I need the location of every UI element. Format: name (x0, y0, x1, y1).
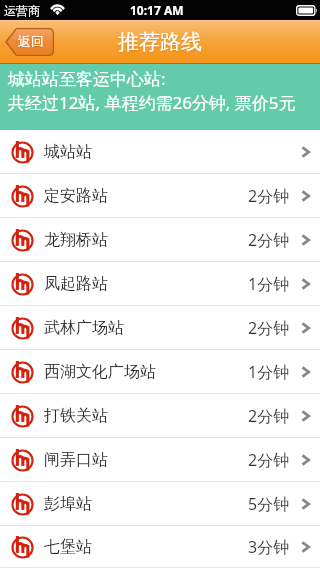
staticText: 2分钟 (248, 317, 290, 339)
staticText: 打铁关站 (44, 406, 108, 426)
staticText: 5分钟 (248, 493, 290, 515)
staticText: 推荐路线 (118, 29, 202, 55)
button[interactable]: 七堡站 (0, 526, 320, 568)
staticText: 3分钟 (248, 536, 290, 558)
staticText: 2分钟 (248, 185, 290, 207)
staticText: 1分钟 (248, 361, 290, 383)
button[interactable]: 凤起路站 (0, 262, 320, 306)
staticText: 定安路站 (44, 186, 108, 206)
staticText: 2分钟 (248, 405, 290, 427)
staticText: 城站站至客运中心站: (8, 67, 166, 90)
staticText: 1分钟 (248, 273, 290, 295)
button[interactable]: 闸弄口站 (0, 438, 320, 482)
button[interactable]: 龙翔桥站 (0, 218, 320, 262)
staticText: 城站站 (44, 142, 92, 162)
staticText: 10:17 AM (130, 2, 184, 18)
staticText: 西湖文化广场站 (44, 362, 156, 382)
staticText: 凤起路站 (44, 274, 108, 294)
staticText: 返回 (18, 33, 44, 49)
staticText: 彭埠站 (44, 494, 92, 514)
staticText: 共经过12站, 单程约需26分钟, 票价5元 (8, 91, 296, 114)
staticText: 闸弄口站 (44, 450, 108, 470)
staticText: 龙翔桥站 (44, 230, 108, 250)
staticText: 武林广场站 (44, 318, 124, 338)
button[interactable]: 城站站 (0, 130, 320, 174)
button[interactable]: 西湖文化广场站 (0, 350, 320, 394)
staticText: 七堡站 (44, 537, 92, 557)
staticText: 2分钟 (248, 229, 290, 251)
staticText: 运营商 (4, 3, 40, 18)
button[interactable]: 武林广场站 (0, 306, 320, 350)
button[interactable]: 打铁关站 (0, 394, 320, 438)
button[interactable]: 返回 (5, 28, 54, 56)
button[interactable]: 彭埠站 (0, 482, 320, 526)
staticText: 2分钟 (248, 449, 290, 471)
button[interactable]: 定安路站 (0, 174, 320, 218)
